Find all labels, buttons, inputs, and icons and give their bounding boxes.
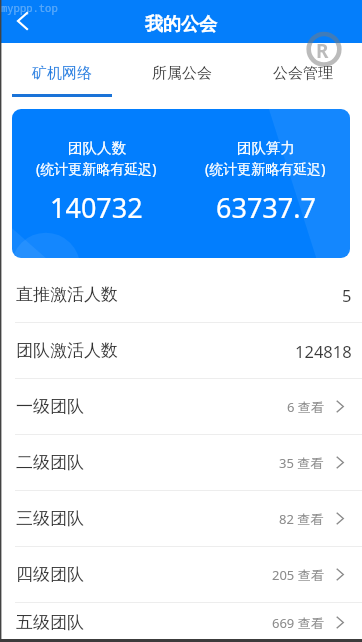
staticText: 四级团队 [16,564,84,585]
staticText: 205 查看 [272,566,324,584]
staticText: (统计更新略有延迟) [36,159,157,178]
staticText: 63737.7 [216,189,316,226]
staticText: 所属公会 [152,64,212,83]
staticText: 5 [342,284,352,306]
button[interactable]: 直推激活人数 [0,267,362,322]
button[interactable]: 五级团队 [0,603,362,642]
staticText: 二级团队 [16,452,84,473]
staticText: 团队算力 [237,139,295,157]
button[interactable]: 矿机网络 [0,43,120,97]
staticText: (统计更新略有延迟) [205,159,326,178]
staticText: 矿机网络 [32,64,92,83]
staticText: 直推激活人数 [16,284,118,305]
staticText: 35 查看 [279,454,324,472]
staticText: 我的公会 [145,13,217,36]
staticText: 124818 [295,340,352,362]
button[interactable]: 四级团队 [0,547,362,602]
staticText: 团队激活人数 [16,340,118,361]
staticText: 一级团队 [16,396,84,417]
staticText: 团队人数 [68,139,126,157]
button[interactable]: 二级团队 [0,435,362,490]
staticText: 6 查看 [287,398,324,416]
staticText: 公会管理 [273,64,333,83]
button[interactable]: Back [8,8,36,36]
staticText: 五级团队 [16,612,84,633]
staticText: 140732 [50,189,143,226]
staticText: 669 查看 [272,614,324,632]
button[interactable]: 一级团队 [0,379,362,434]
button[interactable]: 三级团队 [0,491,362,546]
button[interactable]: 所属公会 [120,43,241,97]
button[interactable]: 公会管理 [241,43,362,97]
staticText: myppp.top [1,1,58,15]
staticText: 三级团队 [16,508,84,529]
staticText: 82 查看 [279,510,324,528]
button[interactable]: 团队激活人数 [0,323,362,378]
staticText: R [316,38,329,64]
